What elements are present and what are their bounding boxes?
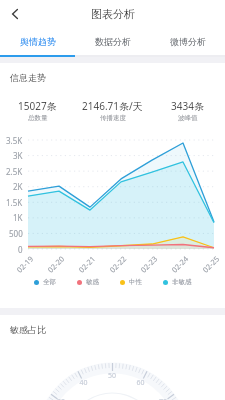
button[interactable]: 微博分析 bbox=[150, 28, 225, 57]
staticText: 传播速度 bbox=[100, 114, 126, 122]
staticText: 微博分析 bbox=[170, 36, 206, 47]
button[interactable]: 非敏感 bbox=[163, 278, 192, 286]
staticText: 数据分析 bbox=[95, 36, 131, 47]
staticText: 15027条 bbox=[18, 99, 57, 113]
staticText: 总数量 bbox=[28, 114, 48, 122]
button[interactable]: 中性 bbox=[120, 278, 142, 286]
staticText: 图表分析 bbox=[91, 7, 135, 21]
staticText: 波峰值 bbox=[178, 114, 198, 122]
staticText: 非敏感 bbox=[172, 278, 192, 286]
button[interactable]: Back bbox=[0, 0, 30, 28]
button[interactable]: 敏感 bbox=[77, 278, 99, 286]
staticText: 敏感占比 bbox=[10, 324, 46, 335]
staticText: 敏感 bbox=[86, 278, 99, 286]
staticText: 全部 bbox=[43, 278, 56, 286]
staticText: 3434条 bbox=[171, 99, 204, 113]
button[interactable]: 全部 bbox=[34, 278, 56, 286]
staticText: 信息走势 bbox=[10, 72, 46, 83]
staticText: 舆情趋势 bbox=[20, 36, 56, 47]
button[interactable]: 数据分析 bbox=[75, 28, 150, 57]
staticText: 中性 bbox=[129, 278, 142, 286]
button[interactable]: 舆情趋势 bbox=[0, 28, 75, 57]
staticText: 2146.71条/天 bbox=[82, 99, 143, 113]
